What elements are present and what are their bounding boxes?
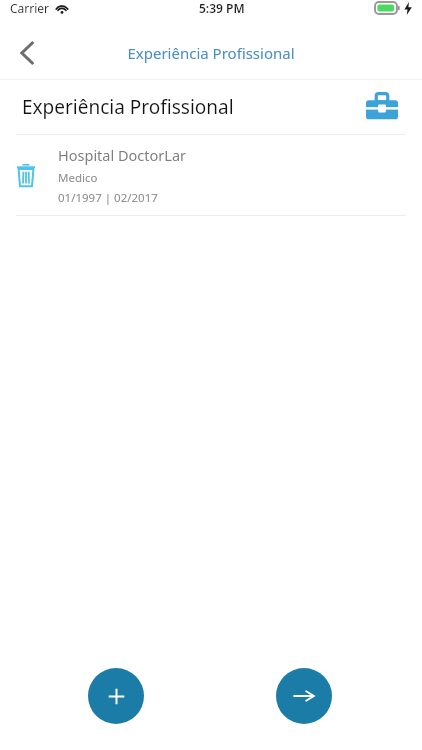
staticText: Experiência Profissional: [22, 94, 234, 120]
staticText: 01/1997 | 02/2017: [58, 190, 158, 206]
button[interactable]: Experiência Profissional: [362, 87, 402, 127]
button[interactable]: Delete: [0, 135, 422, 215]
staticText: Medico: [58, 170, 98, 186]
button[interactable]: Add: [88, 668, 144, 724]
staticText: 5:39 PM: [199, 0, 245, 16]
staticText: Hospital DoctorLar: [58, 145, 187, 165]
button[interactable]: Back: [6, 31, 50, 75]
staticText: Carrier: [10, 0, 50, 16]
staticText: Experiência Profissional: [127, 43, 295, 63]
button[interactable]: Delete: [6, 155, 46, 195]
button[interactable]: Next: [276, 668, 332, 724]
